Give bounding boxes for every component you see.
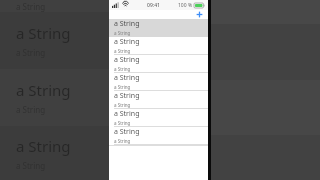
staticText: a String bbox=[114, 84, 131, 90]
staticText: a String bbox=[114, 91, 140, 101]
button[interactable]: a String bbox=[109, 37, 208, 55]
button[interactable]: a String bbox=[109, 19, 208, 37]
staticText: a String bbox=[114, 37, 140, 47]
staticText: a String bbox=[16, 47, 46, 58]
button[interactable]: a String bbox=[109, 91, 208, 109]
staticText: a String bbox=[114, 138, 131, 144]
staticText: a String bbox=[16, 80, 71, 100]
staticText: a String bbox=[114, 120, 131, 126]
staticText: 100 % bbox=[178, 2, 193, 9]
staticText: a String bbox=[114, 73, 140, 83]
staticText: a String bbox=[16, 160, 46, 171]
staticText: a String bbox=[16, 1, 46, 12]
staticText: a String bbox=[114, 66, 131, 72]
button[interactable]: a String bbox=[109, 127, 208, 145]
button[interactable]: a String bbox=[109, 109, 208, 127]
button[interactable]: a String bbox=[109, 55, 208, 73]
staticText: a String bbox=[114, 109, 140, 119]
button[interactable]: Add bbox=[195, 10, 204, 19]
staticText: 09:41 bbox=[147, 2, 160, 9]
button[interactable]: a String bbox=[109, 73, 208, 91]
staticText: a String bbox=[16, 104, 46, 115]
staticText: a String bbox=[114, 30, 131, 36]
staticText: a String bbox=[114, 19, 140, 29]
staticText: a String bbox=[114, 102, 131, 108]
staticText: a String bbox=[16, 136, 71, 156]
staticText: a String bbox=[114, 48, 131, 54]
staticText: a String bbox=[114, 127, 140, 137]
staticText: a String bbox=[114, 55, 140, 65]
staticText: a String bbox=[16, 23, 71, 43]
